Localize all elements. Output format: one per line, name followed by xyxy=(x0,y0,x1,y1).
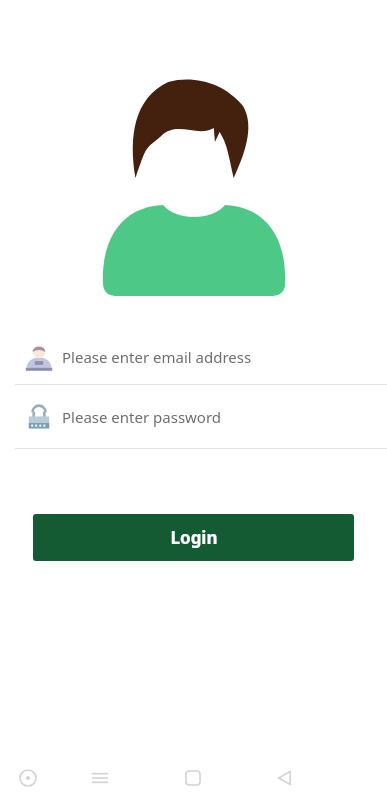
button[interactable]: Please enter email address xyxy=(0,330,387,384)
button[interactable]: Assistant xyxy=(13,763,43,793)
button[interactable]: Login xyxy=(33,514,354,561)
button[interactable]: Home xyxy=(178,763,208,793)
button[interactable]: Back xyxy=(270,763,300,793)
staticText: Please enter password xyxy=(62,407,222,427)
button[interactable]: Recent apps xyxy=(85,763,115,793)
staticText: Login xyxy=(170,526,218,549)
button[interactable]: Please enter password xyxy=(0,385,387,448)
staticText: Please enter email address xyxy=(62,347,252,367)
